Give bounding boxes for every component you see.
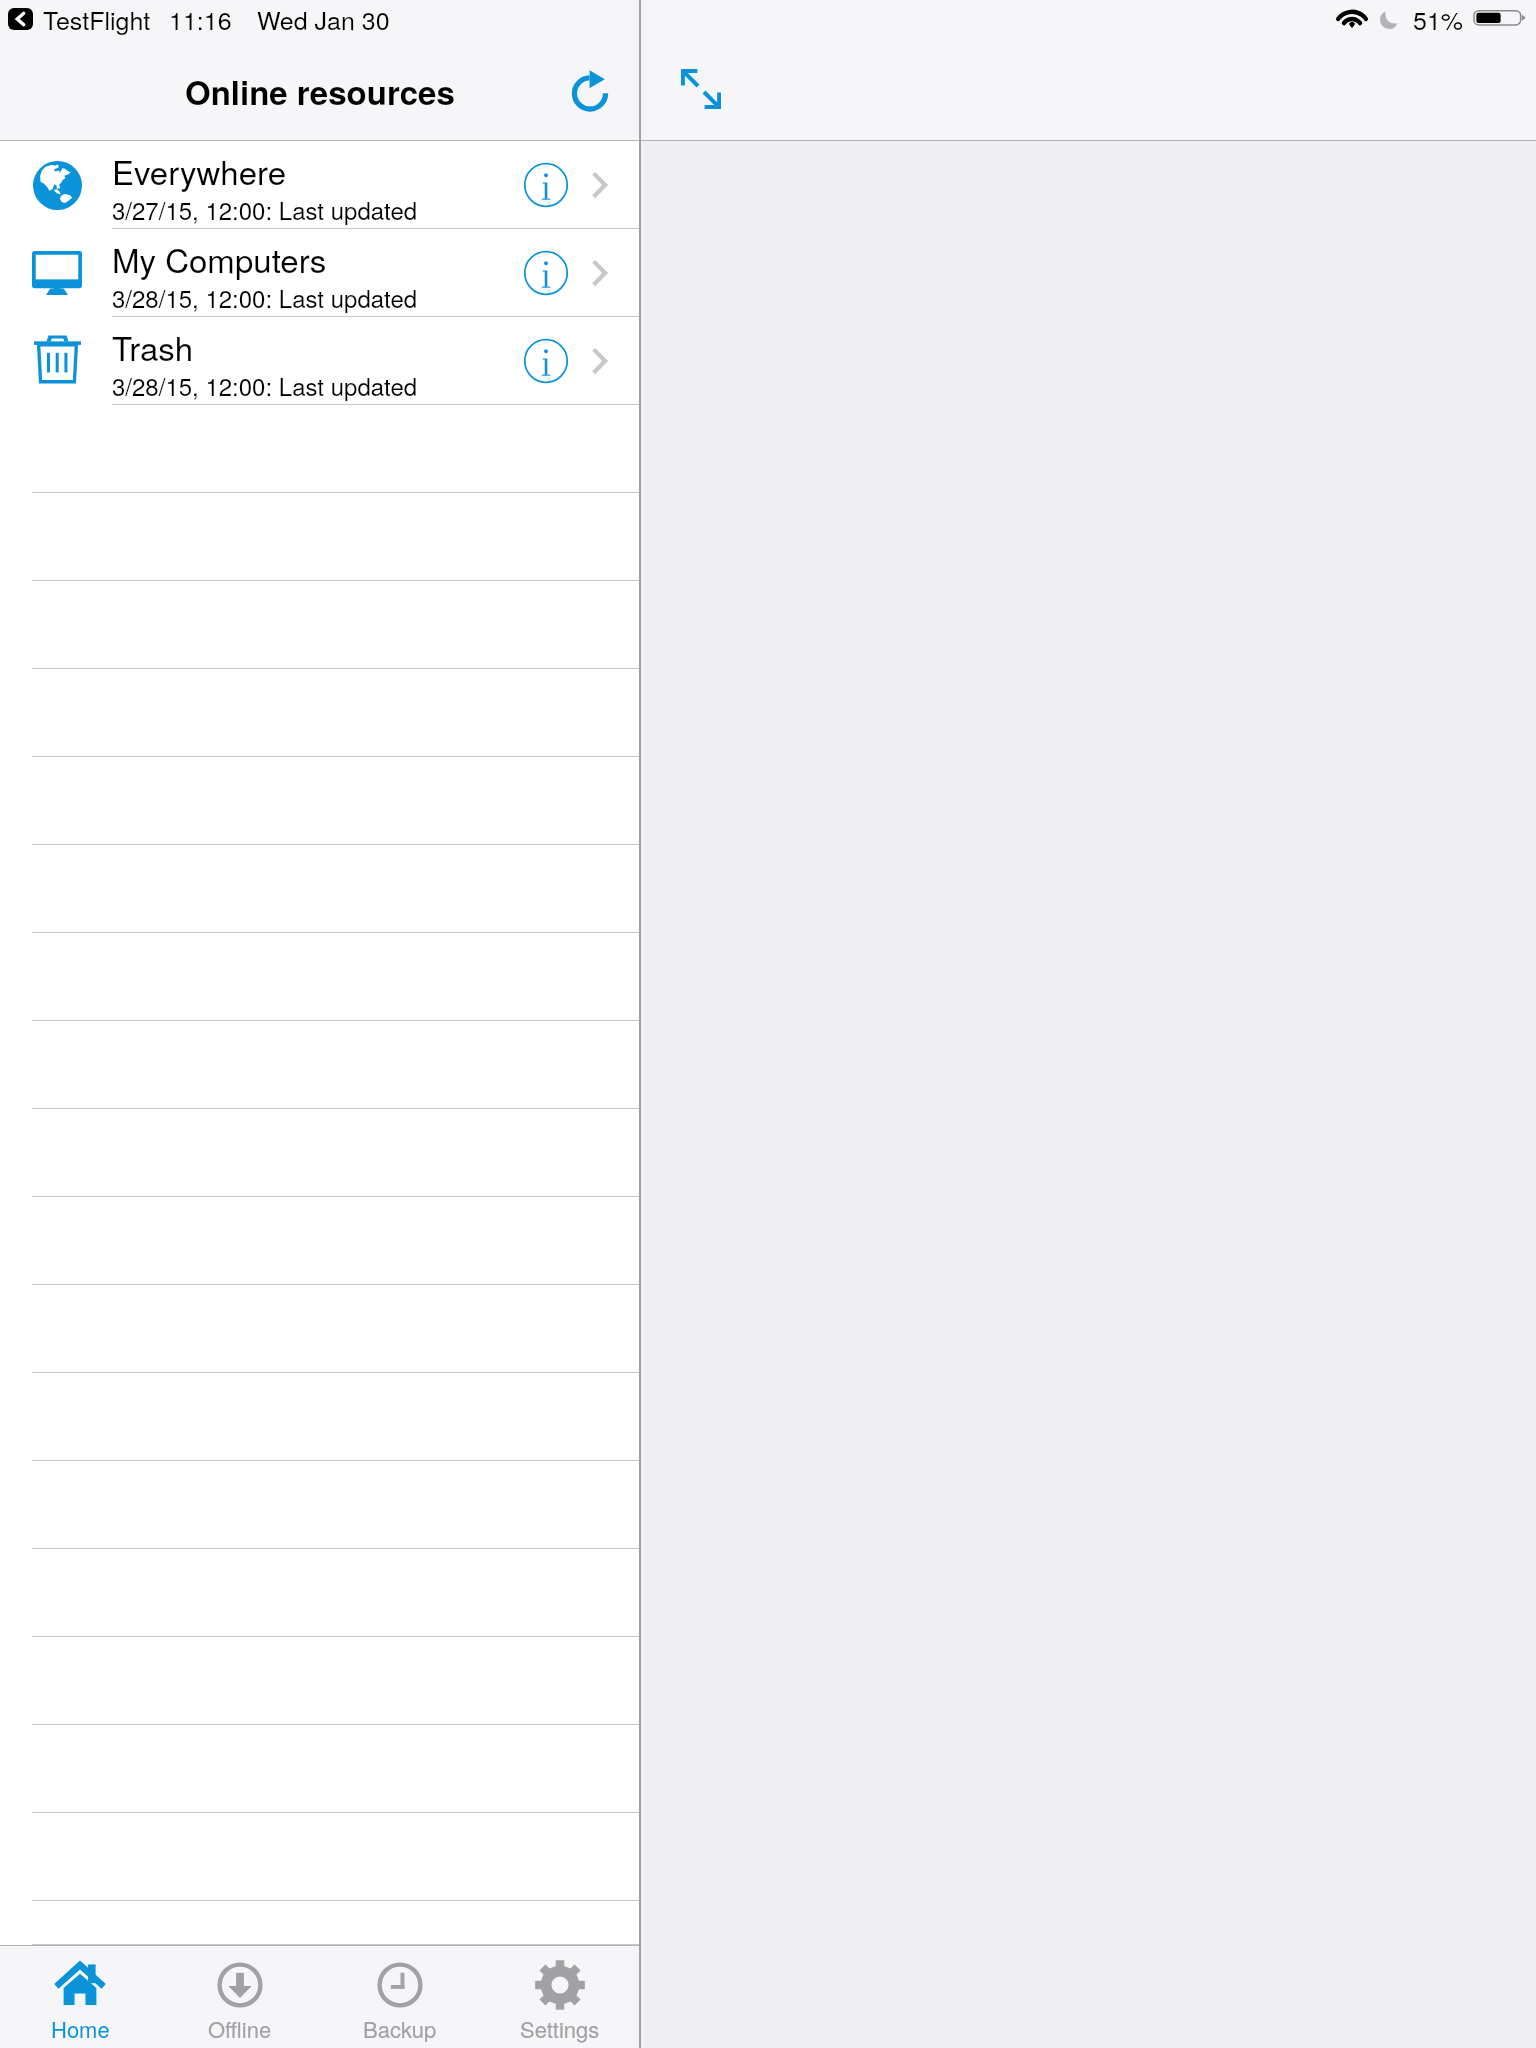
staticText: 11:16 xyxy=(169,1,232,37)
staticText: 3/27/15, 12:00: Last updated xyxy=(112,192,418,226)
staticText: TestFlight xyxy=(43,1,151,37)
button[interactable]: Offline xyxy=(160,1945,320,2048)
staticText: Online resources xyxy=(185,68,455,115)
button[interactable]: Settings xyxy=(480,1945,640,2048)
button[interactable]: Expand xyxy=(681,69,721,109)
staticText: Home xyxy=(51,2013,110,2045)
staticText: 3/28/15, 12:00: Last updated xyxy=(112,280,418,314)
staticText: My Computers xyxy=(112,235,327,282)
button[interactable]: Info xyxy=(515,154,577,216)
button[interactable]: Home xyxy=(0,1945,160,2048)
staticText: Trash xyxy=(112,323,194,370)
button[interactable]: Info xyxy=(515,330,577,392)
staticText: Wed Jan 30 xyxy=(257,1,390,37)
button[interactable]: Back to TestFlight xyxy=(8,8,33,30)
button[interactable]: Refresh xyxy=(562,62,618,118)
staticText: Offline xyxy=(208,2013,272,2045)
staticText: 3/28/15, 12:00: Last updated xyxy=(112,368,418,402)
staticText: 51% xyxy=(1413,1,1464,37)
staticText: Everywhere xyxy=(112,147,287,194)
button[interactable]: Backup xyxy=(320,1945,480,2048)
staticText: Backup xyxy=(363,2013,437,2045)
button[interactable]: Everywhere xyxy=(0,141,640,229)
staticText: Settings xyxy=(520,2013,600,2045)
button[interactable]: Trash xyxy=(0,317,640,405)
button[interactable]: Info xyxy=(515,242,577,304)
button[interactable]: My Computers xyxy=(0,229,640,317)
